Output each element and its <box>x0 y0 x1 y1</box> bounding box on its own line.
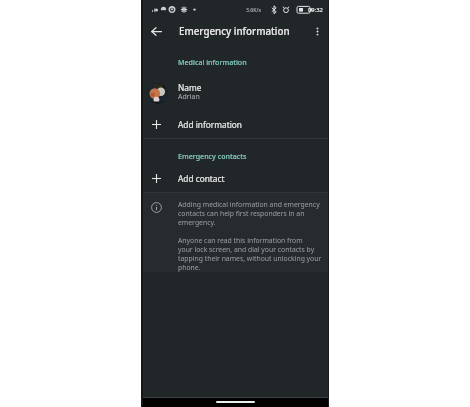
button[interactable]: Add information <box>141 111 329 138</box>
staticText: 3.6K/s <box>246 6 261 13</box>
staticText: Adrian <box>178 92 200 102</box>
button[interactable]: More options <box>309 23 325 39</box>
staticText: Add information <box>178 119 242 130</box>
staticText: Adding medical information and emergency… <box>178 200 320 227</box>
button[interactable]: Add contact <box>141 165 329 192</box>
staticText: 09:32 <box>308 6 323 14</box>
button[interactable]: Back <box>148 23 165 40</box>
staticText: Anyone can read this information from yo… <box>178 236 322 272</box>
staticText: Emergency information <box>179 25 290 38</box>
staticText: Add contact <box>178 173 225 184</box>
button[interactable]: Name <box>141 79 329 108</box>
staticText: Name <box>178 82 202 93</box>
staticText: Emergency contacts <box>178 151 247 161</box>
staticText: Medical information <box>178 57 247 67</box>
